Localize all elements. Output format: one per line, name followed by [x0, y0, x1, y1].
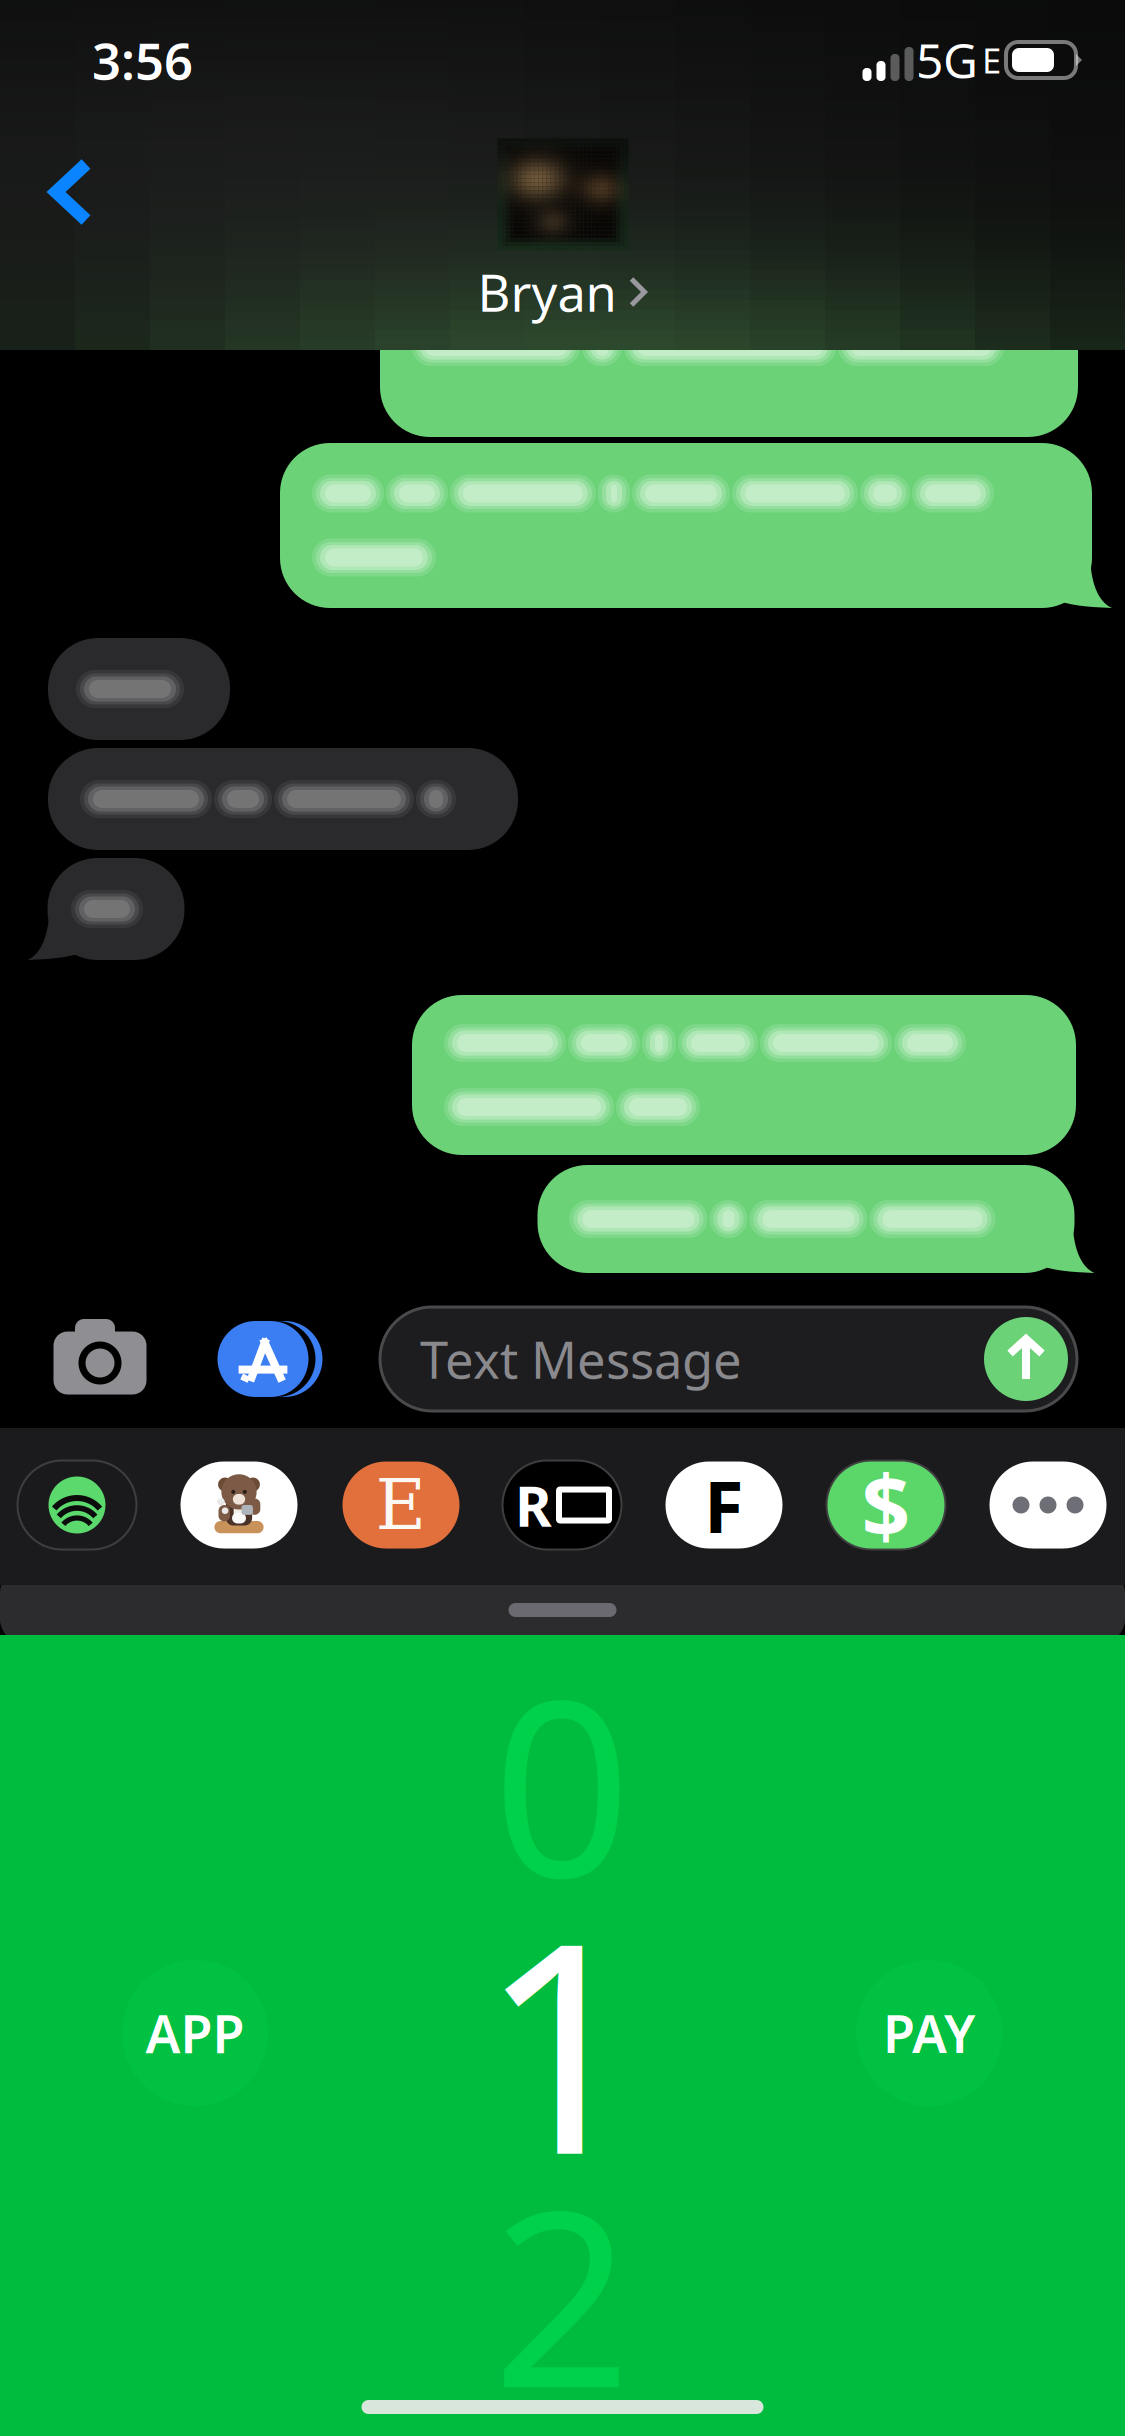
staticText: F — [704, 1457, 744, 1553]
staticText: 1 — [479, 1848, 645, 2234]
staticText: E — [375, 1465, 426, 1545]
button[interactable]: Fetch — [661, 1457, 786, 1552]
button[interactable]: Cash App — [823, 1457, 948, 1552]
staticText: E — [982, 37, 1001, 83]
button[interactable]: APP — [122, 1960, 268, 2106]
button[interactable]: Camera — [52, 1322, 148, 1396]
staticText: Text Message — [420, 1325, 742, 1393]
button[interactable]: Rakuten — [499, 1457, 624, 1552]
button[interactable]: Back — [20, 124, 120, 260]
staticText: $ — [861, 1448, 910, 1562]
button[interactable]: Spotify — [14, 1457, 139, 1552]
staticText: 2 — [492, 2132, 631, 2436]
button[interactable]: Etsy — [338, 1457, 463, 1552]
staticText: 3:56 — [92, 26, 193, 94]
button[interactable]: PAY — [856, 1960, 1002, 2106]
staticText: Bryan — [477, 258, 616, 326]
staticText: 0 — [492, 1622, 631, 1944]
staticText: PAY — [883, 1998, 975, 2068]
button[interactable]: Send — [984, 1317, 1068, 1401]
staticText: R — [515, 1468, 552, 1542]
staticText: 5G — [916, 28, 978, 92]
staticText: APP — [145, 1998, 244, 2068]
button[interactable]: More — [985, 1457, 1110, 1552]
button[interactable]: App Store — [216, 1309, 324, 1409]
button[interactable]: Bryan — [477, 138, 648, 326]
button[interactable]: LINE — [176, 1457, 301, 1552]
